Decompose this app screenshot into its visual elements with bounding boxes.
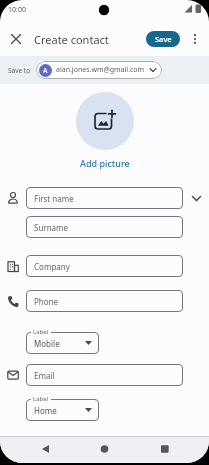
staticText: Home [34,405,57,416]
staticText: Company [34,261,70,272]
button[interactable] [190,34,200,44]
button[interactable]: Add picture [80,157,130,169]
staticText: First name [34,193,74,204]
button[interactable] [0,437,209,463]
staticText: Label [33,395,49,403]
button[interactable]: Email [26,364,183,386]
button[interactable]: Save [146,31,180,47]
staticText: Label [33,328,49,336]
staticText: alan.jones.wm@gmail.com [56,65,145,75]
button[interactable]: Home [26,399,99,421]
staticText: Email [34,370,55,381]
staticText: A [43,66,48,76]
staticText: Surname [34,222,69,233]
staticText: 10:00 [8,5,26,15]
staticText: Phone [34,296,59,307]
button[interactable] [11,34,21,44]
staticText: Save [155,34,172,44]
staticText: Save to [8,66,31,75]
staticText: Mobile [34,338,60,349]
button[interactable]: First name [26,187,183,209]
button[interactable] [76,92,134,150]
staticText: Create contact [34,32,109,47]
button[interactable]: Surname [26,216,183,238]
button[interactable]: Phone [26,290,183,312]
button[interactable]: Mobile [26,332,99,354]
button[interactable]: A [36,61,162,79]
button[interactable]: Company [26,255,183,277]
button[interactable] [192,196,201,201]
